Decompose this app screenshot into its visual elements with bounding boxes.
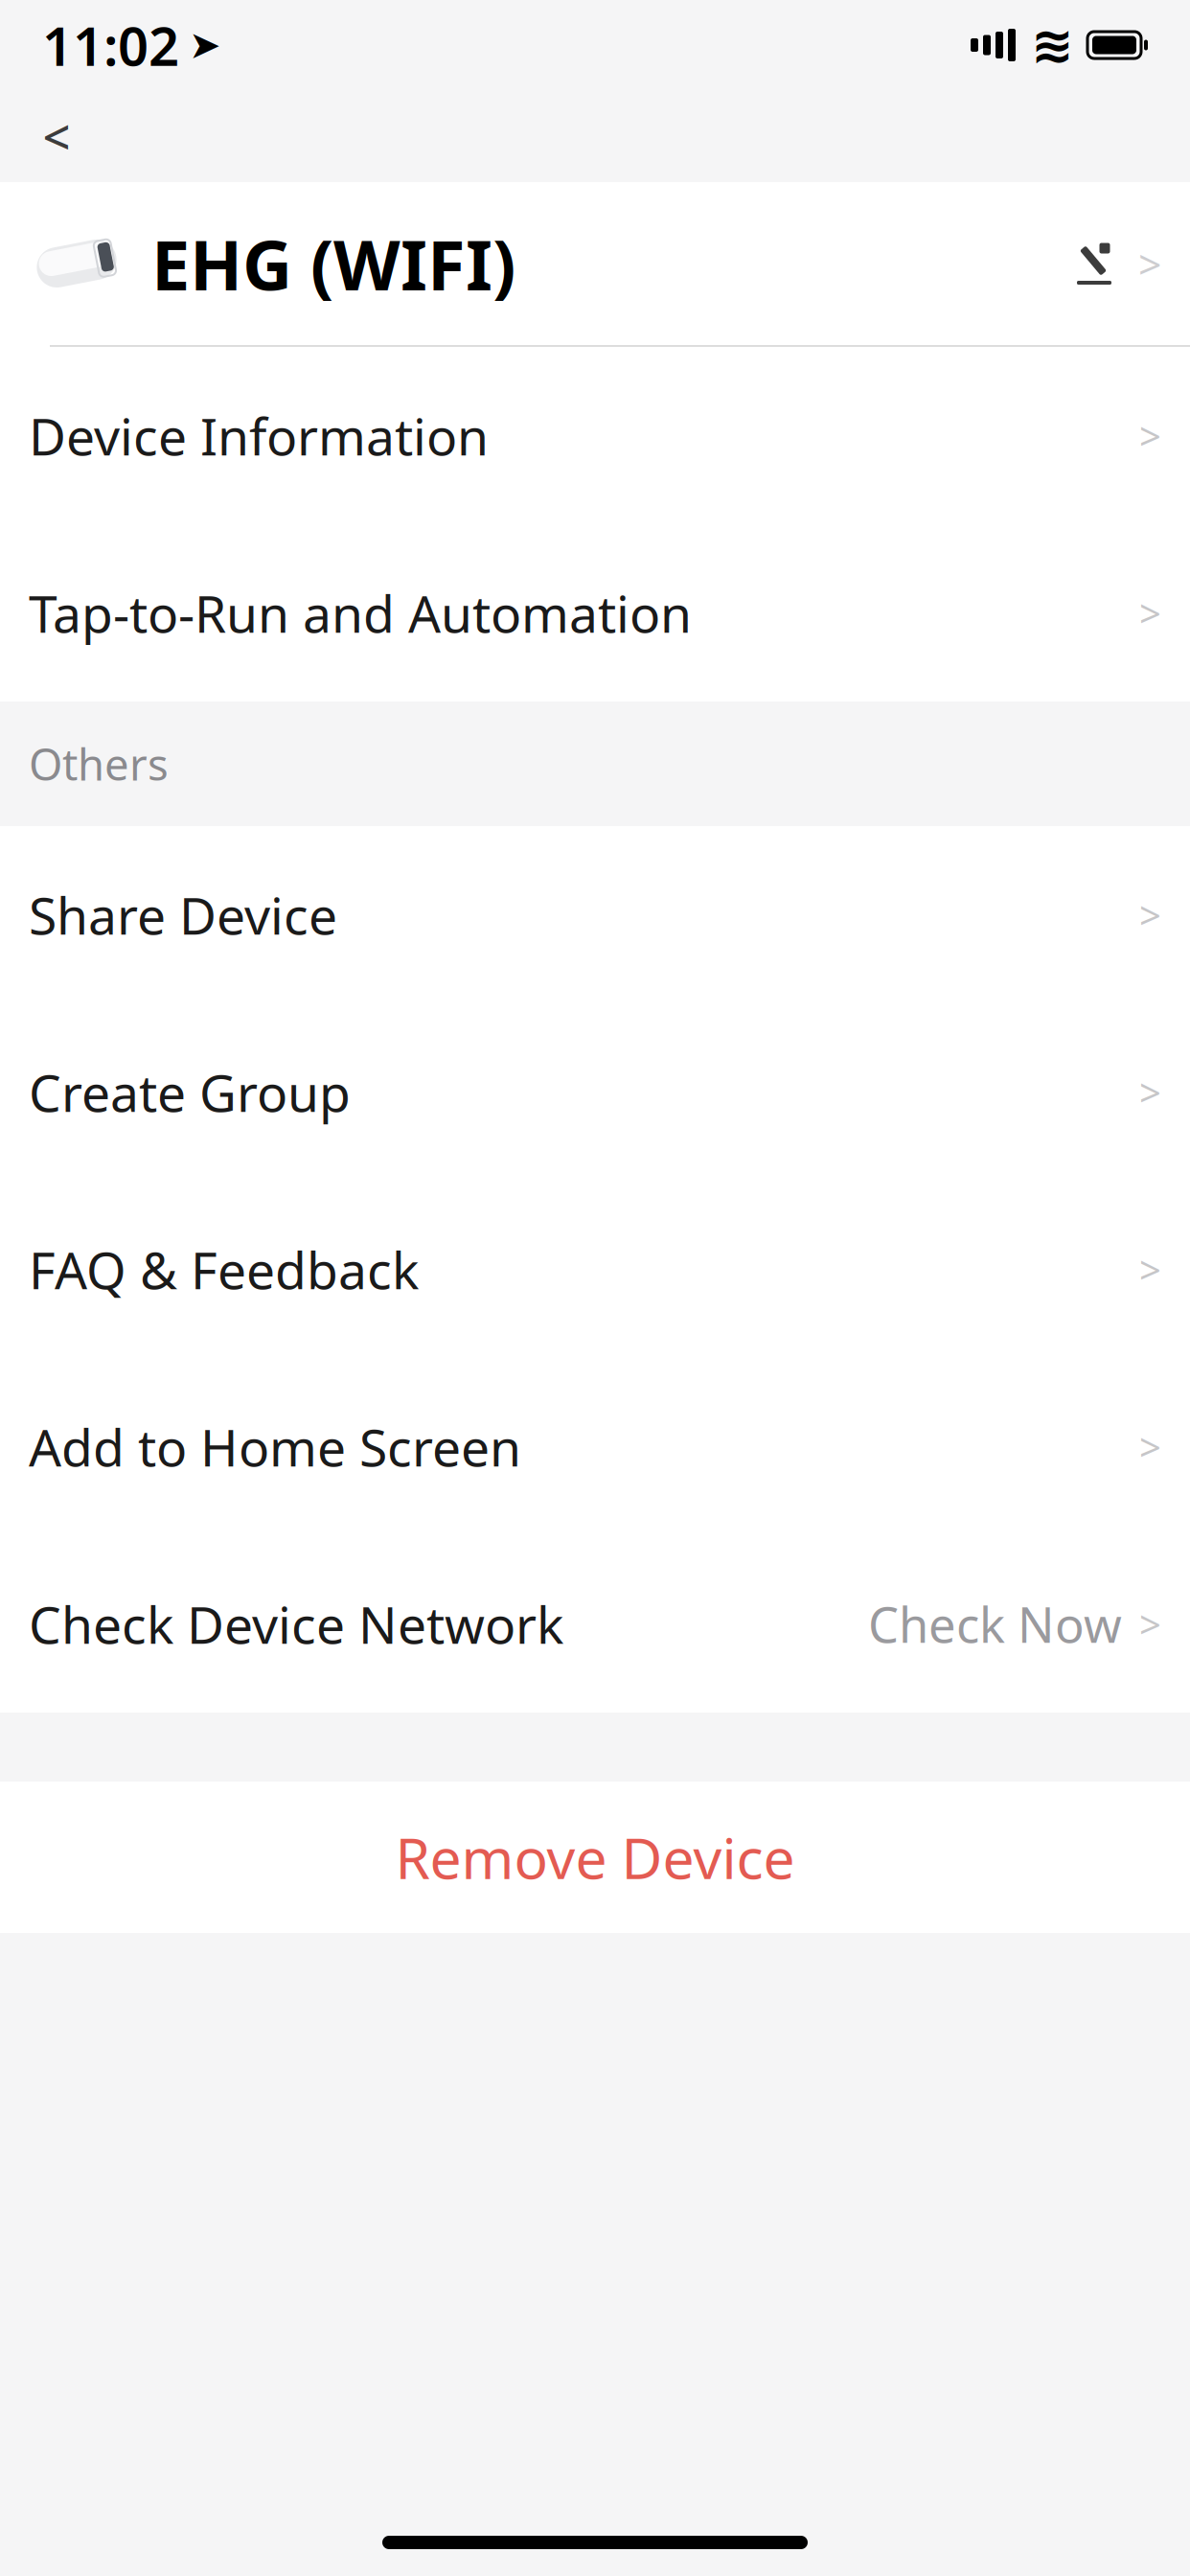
staticText: Check Now	[868, 1592, 1122, 1656]
button[interactable]: Check Device Network	[0, 1535, 1190, 1713]
button[interactable]: Tap-to-Run and Automation	[0, 524, 1190, 701]
staticText: >	[1139, 1067, 1161, 1117]
staticText: Remove Device	[395, 1820, 795, 1895]
staticText: >	[1139, 889, 1161, 940]
button[interactable]: Add to Home Screen	[0, 1358, 1190, 1535]
staticText: Create Group	[29, 1058, 351, 1126]
staticText: >	[1139, 587, 1161, 638]
button[interactable]: Create Group	[0, 1003, 1190, 1181]
button[interactable]: Device Information	[0, 347, 1190, 524]
button[interactable]: FAQ & Feedback	[0, 1181, 1190, 1358]
staticText: Device Information	[29, 402, 489, 469]
staticText: Add to Home Screen	[29, 1413, 521, 1481]
staticText: >	[1138, 236, 1161, 291]
button[interactable]: Remove Device	[0, 1782, 1190, 1933]
staticText: Share Device	[29, 881, 337, 949]
staticText: >	[1139, 1598, 1161, 1649]
staticText: Others	[29, 735, 169, 793]
staticText: Check Device Network	[29, 1590, 563, 1658]
staticText: FAQ & Feedback	[29, 1235, 419, 1303]
staticText: Tap-to-Run and Automation	[29, 579, 692, 647]
button[interactable]: EHG (WIFI)	[0, 182, 1190, 345]
staticText: <	[43, 104, 70, 168]
button[interactable]: Share Device	[0, 826, 1190, 1003]
staticText: ≋	[1031, 16, 1074, 74]
staticText: ➤	[189, 23, 221, 67]
button[interactable]: Back	[13, 93, 100, 179]
staticText: >	[1139, 410, 1161, 461]
staticText: >	[1139, 1421, 1161, 1472]
staticText: 11:02	[42, 9, 179, 81]
staticText: >	[1139, 1244, 1161, 1295]
staticText: EHG (WIFI)	[151, 218, 515, 309]
